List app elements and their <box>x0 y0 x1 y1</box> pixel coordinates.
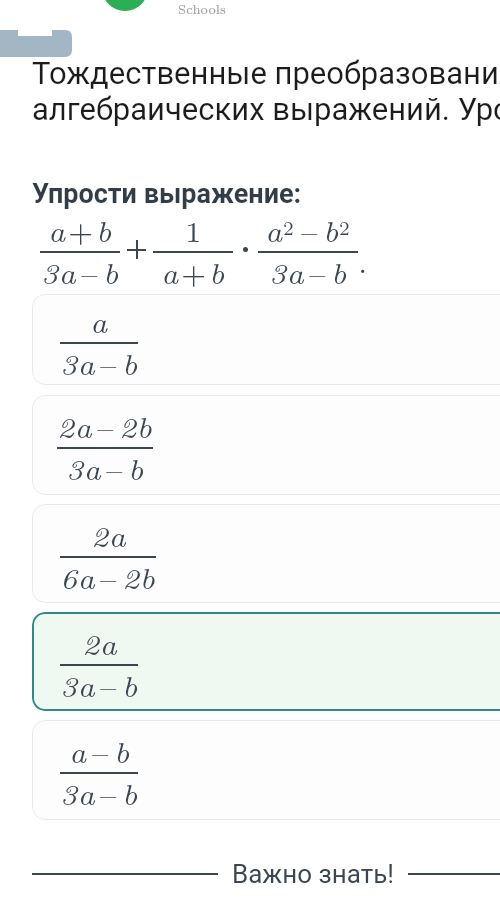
staticText: b <box>122 342 138 383</box>
staticText: 2b <box>122 556 156 597</box>
staticText: a <box>69 730 87 771</box>
staticText: алгебраических выражений. Урок 1 <box>32 91 500 127</box>
staticText: a <box>48 209 66 250</box>
staticText: Важно знать! <box>232 859 394 889</box>
staticText: + <box>181 251 207 292</box>
staticText: a <box>265 209 283 250</box>
staticText: Тождественные преобразования <box>32 55 500 91</box>
staticText: 3a <box>269 251 304 292</box>
staticText: + <box>68 209 94 250</box>
staticText: b <box>122 772 138 813</box>
staticText: 3a <box>66 447 101 488</box>
button[interactable]: a <box>32 294 500 385</box>
button[interactable]: 2a <box>32 504 500 603</box>
staticText: b <box>323 209 339 250</box>
staticText: – <box>81 251 98 292</box>
button[interactable]: a <box>32 720 500 820</box>
staticText: – <box>100 664 117 705</box>
staticText: 2a <box>91 514 126 555</box>
staticText: b <box>209 251 225 292</box>
staticText: 3a <box>60 342 95 383</box>
staticText: b <box>331 251 347 292</box>
staticText: 2a <box>57 405 92 446</box>
staticText: 1 <box>185 209 202 250</box>
staticText: – <box>309 251 326 292</box>
staticText: 2b <box>119 405 153 446</box>
staticText: . <box>358 240 368 281</box>
staticText: Schools <box>178 0 226 17</box>
staticText: b <box>114 730 130 771</box>
staticText: 2 <box>339 214 350 241</box>
button[interactable]: 2a <box>32 612 500 711</box>
staticText: – <box>106 447 123 488</box>
staticText: a <box>90 300 108 341</box>
staticText: – <box>92 730 109 771</box>
staticText: – <box>301 209 318 250</box>
staticText: 3a <box>41 251 76 292</box>
button[interactable]: 2a <box>32 395 500 495</box>
staticText: 3a <box>60 664 95 705</box>
staticText: b <box>103 251 119 292</box>
staticText: – <box>100 772 117 813</box>
staticText: b <box>96 209 112 250</box>
staticText: 2 <box>283 214 294 241</box>
staticText: 2a <box>82 622 117 663</box>
staticText: – <box>100 556 117 597</box>
staticText: Упрости выражение: <box>32 178 302 210</box>
staticText: 6a <box>60 556 95 597</box>
staticText: a <box>161 251 179 292</box>
staticText: b <box>128 447 144 488</box>
staticText: b <box>122 664 138 705</box>
staticText: – <box>97 405 114 446</box>
staticText: – <box>100 342 117 383</box>
staticText: 3a <box>60 772 95 813</box>
